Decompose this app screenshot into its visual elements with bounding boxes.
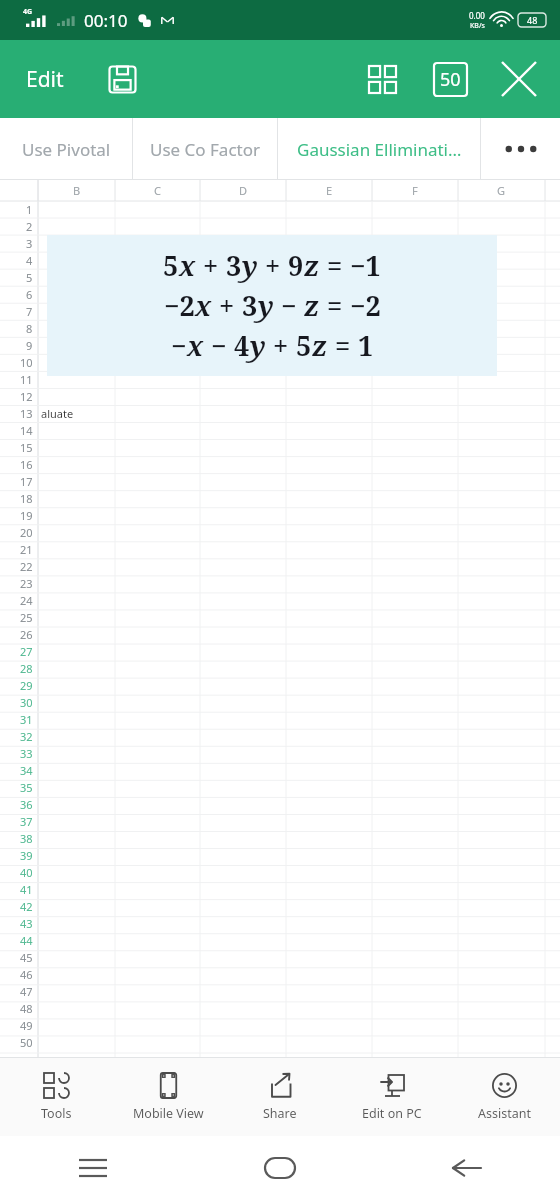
staticText: 0.00 xyxy=(469,10,485,21)
button[interactable]: Assistant xyxy=(448,1058,560,1136)
staticText: z xyxy=(304,247,320,284)
staticText: − xyxy=(171,327,187,364)
staticText: 49 xyxy=(20,1018,33,1033)
staticText: Tools xyxy=(41,1105,72,1122)
staticText: C xyxy=(154,183,161,198)
staticText: − xyxy=(274,287,304,324)
staticText: x xyxy=(187,327,204,364)
staticText: F xyxy=(412,183,418,198)
staticText: Mobile View xyxy=(133,1105,204,1122)
button[interactable]: Edit on PC xyxy=(336,1058,448,1136)
staticText: −2 xyxy=(164,287,195,324)
staticText: 37 xyxy=(20,814,33,829)
staticText: 28 xyxy=(20,661,33,676)
staticText: 46 xyxy=(20,967,33,982)
staticText: Edit on PC xyxy=(362,1105,422,1122)
staticText: 33 xyxy=(20,746,33,761)
staticText: D xyxy=(239,183,248,198)
staticText: 16 xyxy=(20,457,33,472)
staticText: −1 xyxy=(350,247,381,284)
staticText: 3 xyxy=(226,247,242,284)
staticText: G xyxy=(497,183,506,198)
staticText: 8 xyxy=(26,321,33,336)
button[interactable]: Zoom 50 percent xyxy=(424,53,476,105)
staticText: 17 xyxy=(20,474,33,489)
button[interactable]: Use Co Factor xyxy=(133,118,277,180)
button[interactable]: Save xyxy=(98,55,146,103)
staticText: 48 xyxy=(20,1001,33,1016)
button[interactable]: Edit xyxy=(18,59,72,100)
staticText: + xyxy=(212,287,242,324)
staticText: −2 xyxy=(350,287,381,324)
button[interactable]: Use Pivotal xyxy=(0,118,132,180)
button[interactable]: 5 xyxy=(47,235,497,376)
staticText: 13 xyxy=(20,406,33,421)
staticText: 2 xyxy=(26,219,33,234)
staticText: 6 xyxy=(26,287,33,302)
staticText: 00:10 xyxy=(84,9,128,32)
staticText: 1 xyxy=(358,327,374,364)
staticText: y xyxy=(250,327,266,364)
button[interactable]: Share xyxy=(224,1058,336,1136)
button[interactable]: Tools xyxy=(0,1058,112,1136)
staticText: 4 xyxy=(234,327,250,364)
staticText: 18 xyxy=(20,491,33,506)
button[interactable]: Grid view xyxy=(356,53,408,105)
staticText: 45 xyxy=(20,950,33,965)
staticText: 1 xyxy=(26,202,33,217)
staticText: 50 xyxy=(440,67,461,92)
staticText: 43 xyxy=(20,916,33,931)
button[interactable]: Back xyxy=(373,1136,560,1200)
staticText: 48 xyxy=(527,14,538,26)
button[interactable]: Recent apps xyxy=(0,1136,186,1200)
button[interactable]: More options xyxy=(481,118,560,180)
staticText: 3 xyxy=(242,287,258,324)
staticText: 29 xyxy=(20,678,33,693)
staticText: − xyxy=(204,327,234,364)
staticText: 35 xyxy=(20,780,33,795)
staticText: x xyxy=(195,287,212,324)
staticText: E xyxy=(326,183,333,198)
staticText: 4 xyxy=(26,253,33,268)
staticText: 14 xyxy=(20,423,33,438)
staticText: 11 xyxy=(20,372,33,387)
staticText: 40 xyxy=(20,865,33,880)
staticText: Use Co Factor xyxy=(150,138,260,161)
button[interactable]: Gaussian Elliminati… xyxy=(278,118,480,180)
staticText: 3 xyxy=(26,236,33,251)
staticText: y xyxy=(242,247,258,284)
staticText: 30 xyxy=(20,695,33,710)
staticText: 24 xyxy=(20,593,33,608)
staticText: 15 xyxy=(20,440,33,455)
staticText: = xyxy=(320,287,350,324)
staticText: 9 xyxy=(26,338,33,353)
staticText: 36 xyxy=(20,797,33,812)
staticText: aluate xyxy=(41,406,74,421)
staticText: 9 xyxy=(288,247,304,284)
staticText: 5 xyxy=(163,247,179,284)
staticText: 25 xyxy=(20,610,33,625)
staticText: 12 xyxy=(20,389,33,404)
staticText: 50 xyxy=(20,1035,33,1050)
staticText: 42 xyxy=(20,899,33,914)
button[interactable]: Mobile View xyxy=(112,1058,224,1136)
staticText: Use Pivotal xyxy=(22,138,111,161)
staticText: 34 xyxy=(20,763,33,778)
staticText: = xyxy=(328,327,358,364)
staticText: 31 xyxy=(20,712,33,727)
staticText: 5 xyxy=(296,327,312,364)
button[interactable]: Home xyxy=(186,1136,373,1200)
staticText: 19 xyxy=(20,508,33,523)
staticText: 20 xyxy=(20,525,33,540)
staticText: 39 xyxy=(20,848,33,863)
staticText: 26 xyxy=(20,627,33,642)
staticText: Gaussian Elliminati… xyxy=(297,138,462,161)
staticText: 22 xyxy=(20,559,33,574)
staticText: 47 xyxy=(20,984,33,999)
staticText: 7 xyxy=(26,304,33,319)
staticText: 41 xyxy=(20,882,33,897)
button[interactable]: Close xyxy=(490,50,548,108)
staticText: z xyxy=(312,327,328,364)
staticText: 38 xyxy=(20,831,33,846)
staticText: 27 xyxy=(20,644,33,659)
